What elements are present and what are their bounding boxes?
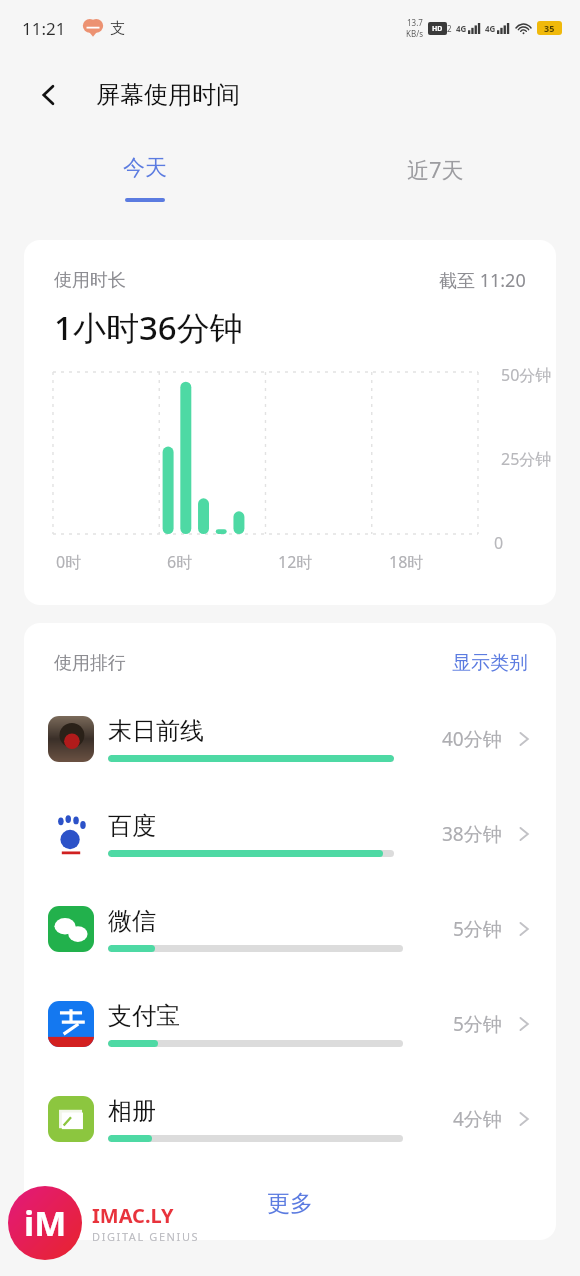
staticText: 1小时36分钟 xyxy=(54,305,243,350)
staticText: 2 xyxy=(447,23,452,34)
button[interactable]: 相册 xyxy=(24,1071,556,1166)
staticText: HD xyxy=(432,24,443,34)
staticText: 4G xyxy=(485,23,496,34)
staticText: 截至 11:20 xyxy=(439,268,526,293)
staticText: 显示类别 xyxy=(452,651,528,675)
staticText: 百度 xyxy=(108,811,156,841)
staticText: 末日前线 xyxy=(108,716,204,746)
staticText: 6时 xyxy=(167,551,193,573)
button[interactable]: 近7天 xyxy=(290,134,580,222)
staticText: 支 xyxy=(110,19,125,38)
staticText: 4分钟 xyxy=(453,1106,502,1132)
staticText: 今天 xyxy=(123,154,167,182)
staticText: 微信 xyxy=(108,906,156,936)
staticText: 4G xyxy=(456,23,467,34)
staticText: 40分钟 xyxy=(442,726,502,752)
button[interactable]: 更多 xyxy=(24,1166,556,1240)
staticText: 38分钟 xyxy=(442,821,502,847)
staticText: 屏幕使用时间 xyxy=(96,80,240,110)
staticText: 近7天 xyxy=(407,154,464,184)
staticText: 更多 xyxy=(267,1189,313,1218)
staticText: 35 xyxy=(544,22,555,34)
staticText: 13.7 xyxy=(407,17,423,28)
staticText: KB/s xyxy=(406,28,423,39)
staticText: 0 xyxy=(494,532,504,554)
staticText: iM xyxy=(24,1200,67,1246)
staticText: 相册 xyxy=(108,1096,156,1126)
staticText: 0时 xyxy=(56,551,82,573)
staticText: 18时 xyxy=(389,551,424,573)
staticText: 使用时长 xyxy=(54,269,126,292)
button[interactable]: 微信 xyxy=(24,881,556,976)
button[interactable]: 百度 xyxy=(24,786,556,881)
button[interactable]: Back xyxy=(28,74,70,116)
staticText: 支付宝 xyxy=(108,1001,180,1031)
staticText: 5分钟 xyxy=(453,916,502,942)
staticText: IMAC.LY xyxy=(92,1202,174,1229)
staticText: 50分钟 xyxy=(501,364,552,386)
staticText: 25分钟 xyxy=(501,448,552,470)
staticText: 5分钟 xyxy=(453,1011,502,1037)
button[interactable]: 末日前线 xyxy=(24,691,556,786)
staticText: 使用排行 xyxy=(54,652,126,675)
button[interactable]: 今天 xyxy=(0,134,290,222)
staticText: 12时 xyxy=(278,551,313,573)
button[interactable]: 支付宝 xyxy=(24,976,556,1071)
button[interactable]: 显示类别 xyxy=(452,651,528,675)
staticText: 11:21 xyxy=(22,17,66,40)
staticText: DIGITAL GENIUS xyxy=(92,1229,200,1244)
